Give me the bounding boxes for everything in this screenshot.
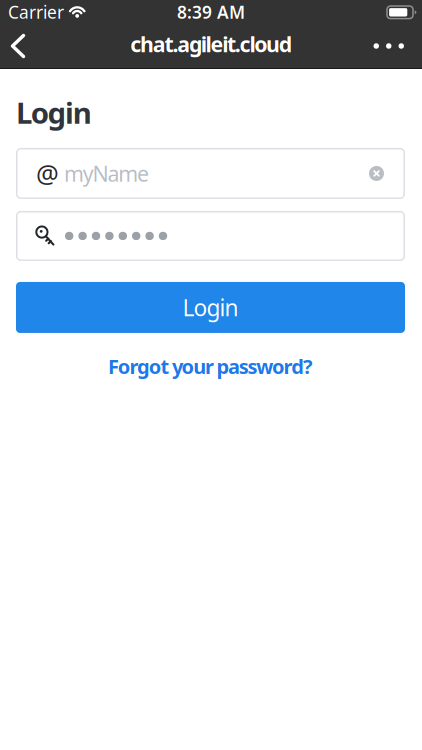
button[interactable]: More options xyxy=(361,24,422,68)
staticText: Login xyxy=(16,93,92,132)
staticText: Login xyxy=(182,292,238,322)
button[interactable]: Login xyxy=(16,282,405,333)
button[interactable]: Back xyxy=(0,24,38,68)
staticText: 8:39 AM xyxy=(177,0,245,23)
staticText: chat.agileit.cloud xyxy=(130,30,292,58)
button[interactable]: Forgot your password? xyxy=(108,353,313,380)
staticText: @ xyxy=(36,157,59,190)
button[interactable]: Clear username xyxy=(369,166,405,181)
staticText: Forgot your password? xyxy=(108,353,313,380)
staticText: Carrier xyxy=(8,0,64,23)
staticText: myName xyxy=(64,159,149,188)
